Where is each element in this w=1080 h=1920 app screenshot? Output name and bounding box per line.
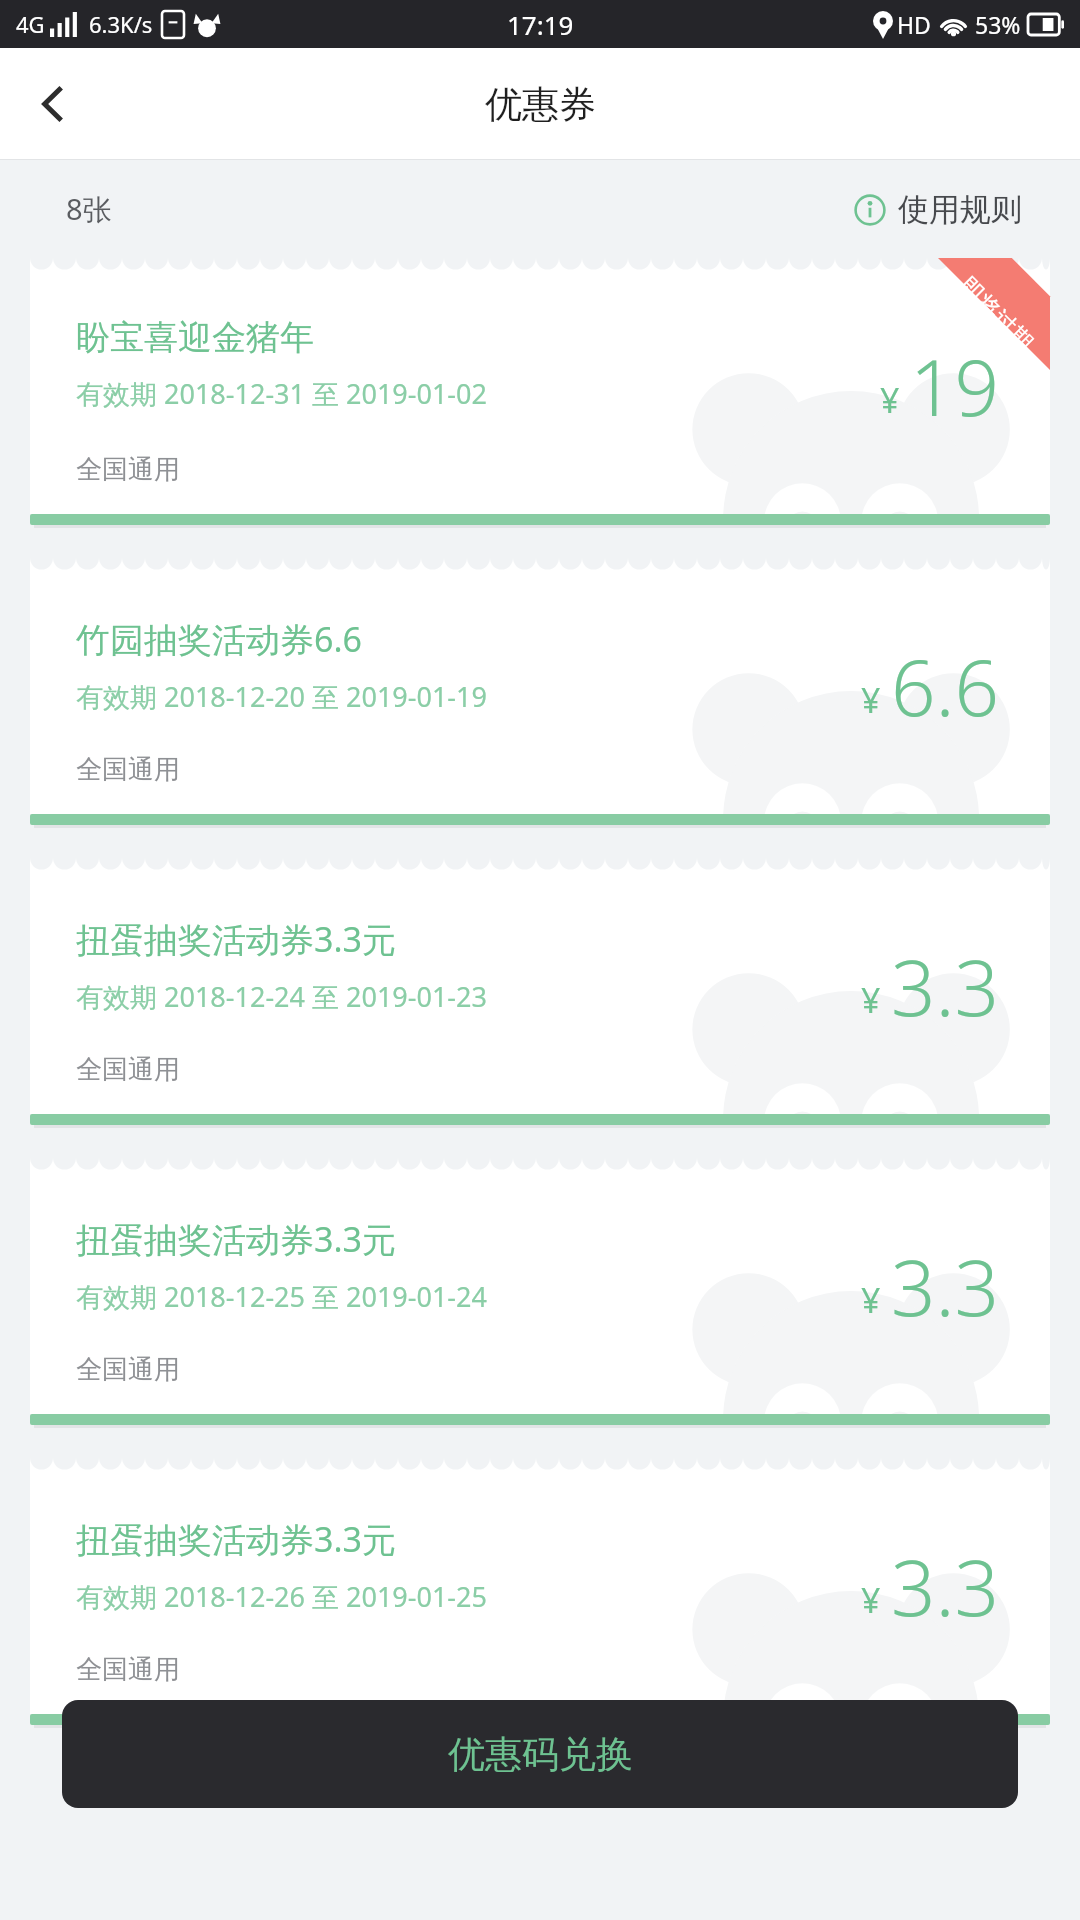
staticText: 8张 [66,189,112,229]
staticText: 即将过期 [953,272,1039,357]
staticText: 有效期 2018-12-24 至 2019-01-23 [76,978,487,1015]
staticText: 全国通用 [76,1353,180,1386]
staticText: 有效期 2018-12-26 至 2019-01-25 [76,1578,487,1615]
staticText: 3.3 [891,933,1000,1039]
staticText: 优惠码兑换 [448,1731,633,1778]
staticText: 17:19 [507,7,574,42]
staticText: 3.3 [891,1533,1000,1639]
staticText: 3.3 [891,1233,1000,1339]
staticText: HD [897,9,931,40]
staticText: 全国通用 [76,753,180,786]
staticText: 6.3K/s [89,9,153,39]
button[interactable]: 扭蛋抽奖活动券3.3元 [30,1458,1050,1728]
staticText: ¥ [861,1277,881,1323]
staticText: ¥ [861,977,881,1023]
staticText: 优惠券 [485,81,596,128]
button[interactable]: 竹园抽奖活动券6.6 [30,558,1050,828]
staticText: 全国通用 [76,1653,180,1686]
button[interactable]: 优惠码兑换 [62,1700,1018,1808]
staticText: 4G [16,9,45,39]
staticText: ¥ [880,377,900,423]
staticText: 全国通用 [76,1053,180,1086]
staticText: 盼宝喜迎金猪年 [76,316,314,359]
staticText: 有效期 2018-12-25 至 2019-01-24 [76,1278,487,1315]
staticText: ¥ [861,1577,881,1623]
staticText: ¥ [861,677,881,723]
staticText: 使用规则 [898,190,1022,229]
staticText: 扭蛋抽奖活动券3.3元 [76,916,397,962]
staticText: 扭蛋抽奖活动券3.3元 [76,1216,397,1262]
staticText: 19 [910,333,1000,439]
button[interactable]: Back [14,64,94,144]
staticText: 全国通用 [76,453,180,486]
button[interactable]: 扭蛋抽奖活动券3.3元 [30,858,1050,1128]
button[interactable]: 扭蛋抽奖活动券3.3元 [30,1158,1050,1428]
staticText: 扭蛋抽奖活动券3.3元 [76,1516,397,1562]
staticText: 竹园抽奖活动券6.6 [76,616,363,662]
button[interactable]: 盼宝喜迎金猪年 [30,258,1050,528]
staticText: 有效期 2018-12-20 至 2019-01-19 [76,678,487,715]
button[interactable]: 使用规则 [854,190,1022,229]
staticText: 6.6 [891,633,1000,739]
staticText: 53% [975,9,1021,40]
staticText: 有效期 2018-12-31 至 2019-01-02 [76,375,487,412]
